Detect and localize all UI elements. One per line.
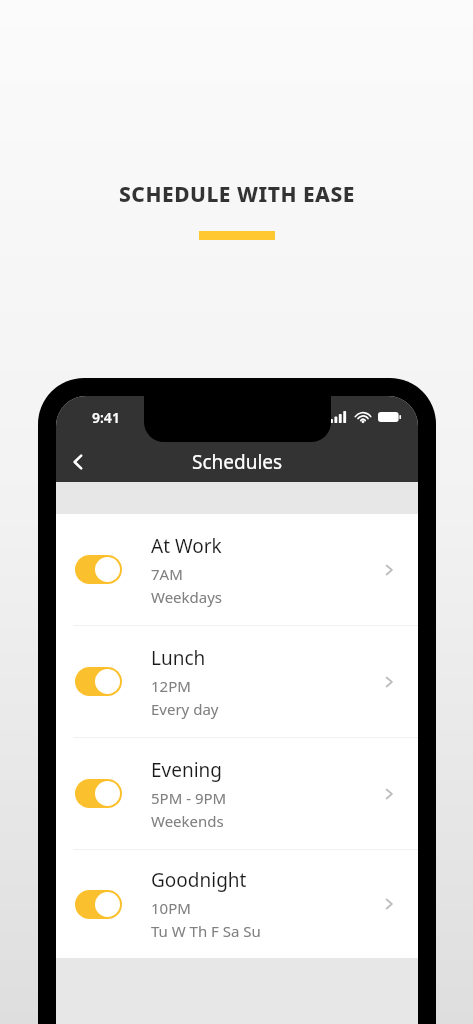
staticText: At Work (151, 533, 222, 559)
staticText: Lunch (151, 645, 206, 671)
staticText: Weekdays (151, 587, 223, 607)
button[interactable]: Back (56, 442, 100, 482)
staticText: 12PM (151, 676, 191, 696)
staticText: Every day (151, 699, 219, 719)
staticText: Schedules (192, 449, 283, 475)
staticText: 5PM - 9PM (151, 788, 227, 808)
button[interactable]: Toggle At Work (75, 555, 122, 584)
button[interactable]: Toggle Goodnight (56, 850, 418, 958)
button[interactable]: Toggle At Work (56, 514, 418, 625)
staticText: Weekends (151, 811, 224, 831)
staticText: Tu W Th F Sa Su (151, 921, 261, 941)
staticText: 10PM (151, 898, 191, 918)
staticText: 9:41 (92, 408, 120, 427)
button[interactable]: Toggle Lunch (56, 626, 418, 737)
staticText: 7AM (151, 564, 183, 584)
staticText: SCHEDULE WITH EASE (119, 180, 355, 209)
staticText: Evening (151, 757, 223, 783)
button[interactable]: Toggle Goodnight (75, 890, 122, 919)
staticText: Goodnight (151, 867, 247, 893)
button[interactable]: Toggle Evening (56, 738, 418, 849)
button[interactable]: Toggle Evening (75, 779, 122, 808)
button[interactable]: Toggle Lunch (75, 667, 122, 696)
